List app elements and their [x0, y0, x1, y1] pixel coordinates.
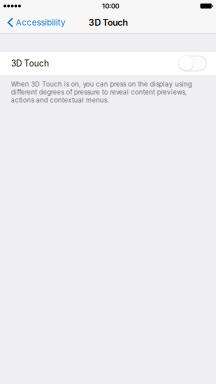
- staticText: 3D Touch: [88, 17, 127, 28]
- staticText: 10:00: [102, 2, 119, 10]
- button[interactable]: 3D Touch: [0, 52, 216, 75]
- staticText: When 3D Touch is on, you can press on th…: [11, 80, 192, 104]
- staticText: 3D Touch: [11, 58, 49, 69]
- button[interactable]: Accessibility: [0, 11, 70, 33]
- staticText: Accessibility: [16, 18, 66, 27]
